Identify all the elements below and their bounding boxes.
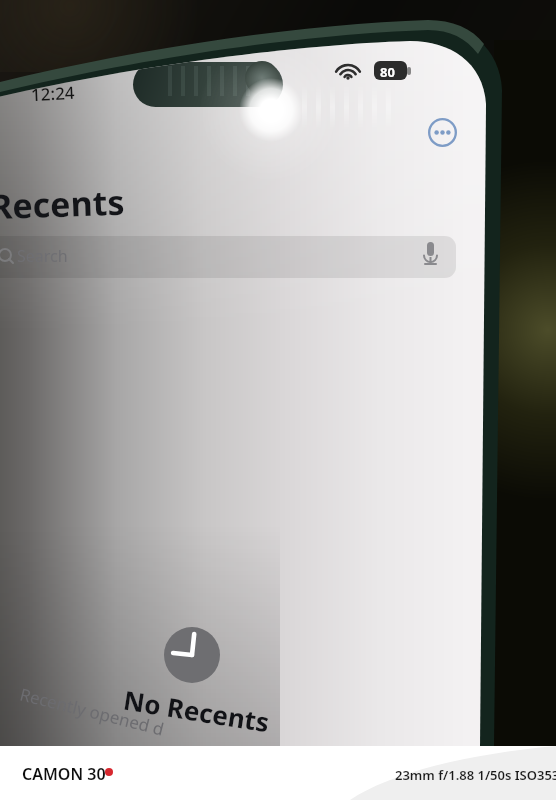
staticText: No Recents — [121, 682, 272, 739]
staticText: 80 — [380, 63, 395, 81]
staticText: Search — [17, 245, 68, 267]
staticText: 23mm f/1.88 1/50s ISO353 — [395, 766, 556, 784]
staticText: Recents — [0, 179, 126, 229]
button[interactable] — [0, 236, 456, 278]
button[interactable]: Voice search — [418, 238, 456, 276]
staticText: 12:24 — [30, 81, 75, 106]
staticText: CAMON 30 — [22, 763, 106, 785]
button[interactable]: More options — [427, 117, 458, 148]
staticText: Recently opened d — [17, 682, 167, 740]
